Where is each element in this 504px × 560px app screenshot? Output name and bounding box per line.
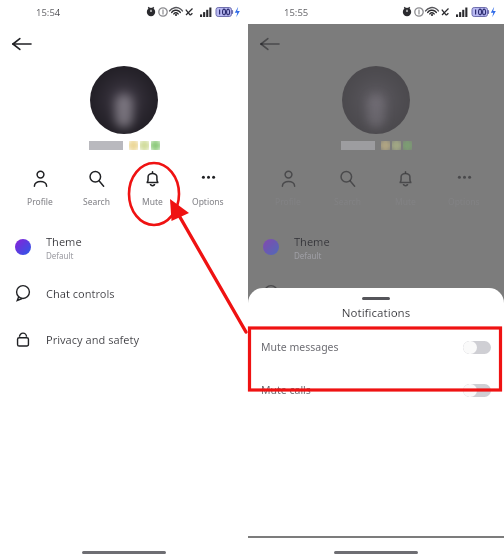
staticText: Chat controls bbox=[294, 286, 363, 301]
button[interactable]: Mute messages bbox=[248, 334, 504, 360]
staticText: Theme bbox=[294, 234, 330, 249]
button[interactable]: Search bbox=[321, 166, 373, 210]
button[interactable]: Theme bbox=[0, 230, 248, 264]
staticText: 15:55 bbox=[284, 6, 309, 19]
staticText: Default bbox=[294, 250, 322, 261]
button[interactable]: Mute bbox=[379, 166, 431, 210]
button[interactable]: Options bbox=[182, 166, 234, 210]
staticText: Search bbox=[83, 196, 110, 208]
staticText: Options bbox=[192, 196, 224, 208]
button[interactable]: Chat controls bbox=[0, 276, 248, 310]
button[interactable]: Search bbox=[70, 166, 122, 210]
staticText: Mute calls bbox=[261, 383, 311, 397]
staticText: Mute messages bbox=[261, 340, 339, 354]
button[interactable]: Back bbox=[248, 24, 292, 64]
staticText: Mute bbox=[142, 196, 163, 208]
staticText: Privacy and safety bbox=[46, 332, 140, 347]
staticText: Privacy and safety bbox=[294, 332, 388, 347]
button[interactable]: Privacy and safety bbox=[248, 322, 504, 356]
button[interactable]: Mute calls bbox=[248, 377, 504, 403]
staticText: Chat controls bbox=[46, 286, 115, 301]
staticText: Profile bbox=[27, 196, 53, 208]
button[interactable]: Options bbox=[438, 166, 490, 210]
button[interactable]: Privacy and safety bbox=[0, 322, 248, 356]
staticText: Notifications bbox=[248, 305, 504, 321]
button[interactable]: Profile bbox=[14, 166, 66, 210]
button[interactable]: Chat controls bbox=[248, 276, 504, 310]
button[interactable]: Mute bbox=[126, 166, 178, 210]
staticText: 15:54 bbox=[36, 6, 61, 19]
button[interactable]: Theme bbox=[248, 230, 504, 264]
staticText: Default bbox=[46, 250, 74, 261]
button[interactable]: Profile bbox=[262, 166, 314, 210]
button[interactable]: Back bbox=[0, 24, 44, 64]
staticText: Theme bbox=[46, 234, 82, 249]
